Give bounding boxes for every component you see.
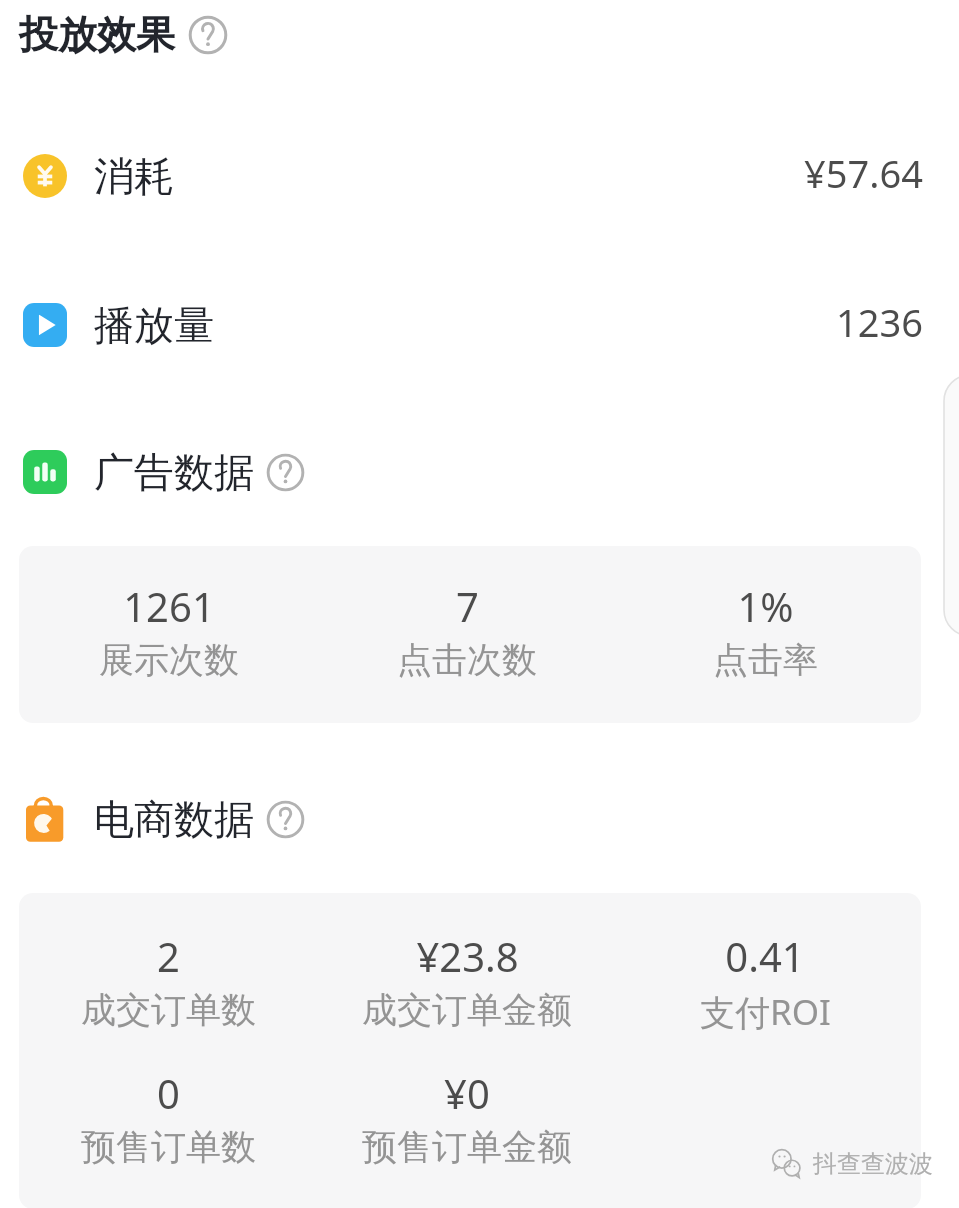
staticText: 预售订单数 <box>81 1125 256 1169</box>
staticText: 播放量 <box>94 300 214 350</box>
staticText: 7 <box>456 579 479 633</box>
button[interactable]: Help <box>266 453 305 492</box>
button[interactable]: Help <box>188 15 228 55</box>
staticText: 抖查查波波 <box>813 1149 933 1179</box>
staticText: 投放效果 <box>19 10 175 59</box>
staticText: 展示次数 <box>99 638 239 682</box>
button[interactable]: 投放效果 <box>19 6 228 63</box>
staticText: 2 <box>157 929 180 983</box>
staticText: ¥57.64 <box>804 147 923 199</box>
staticText: 1261 <box>123 579 215 633</box>
button[interactable]: 播放量 <box>0 287 959 363</box>
button[interactable]: 广告数据 <box>0 438 959 506</box>
staticText: 电商数据 <box>94 794 254 844</box>
staticText: 成交订单金额 <box>362 988 572 1032</box>
staticText: 0 <box>157 1066 180 1120</box>
staticText: 0.41 <box>725 929 805 983</box>
staticText: 广告数据 <box>94 447 254 497</box>
staticText: ¥0 <box>444 1066 490 1120</box>
staticText: 成交订单数 <box>81 988 256 1032</box>
staticText: 1% <box>737 579 794 633</box>
staticText: ¥23.8 <box>416 929 519 983</box>
staticText: 预售订单金额 <box>362 1125 572 1169</box>
button[interactable]: 电商数据 <box>0 785 959 853</box>
button[interactable]: Help <box>266 800 305 839</box>
staticText: 支付ROI <box>700 988 831 1036</box>
staticText: 点击次数 <box>397 638 537 682</box>
button[interactable]: 消耗 <box>0 138 959 214</box>
staticText: 点击率 <box>713 638 818 682</box>
staticText: 消耗 <box>94 151 174 201</box>
staticText: 1236 <box>836 296 923 348</box>
